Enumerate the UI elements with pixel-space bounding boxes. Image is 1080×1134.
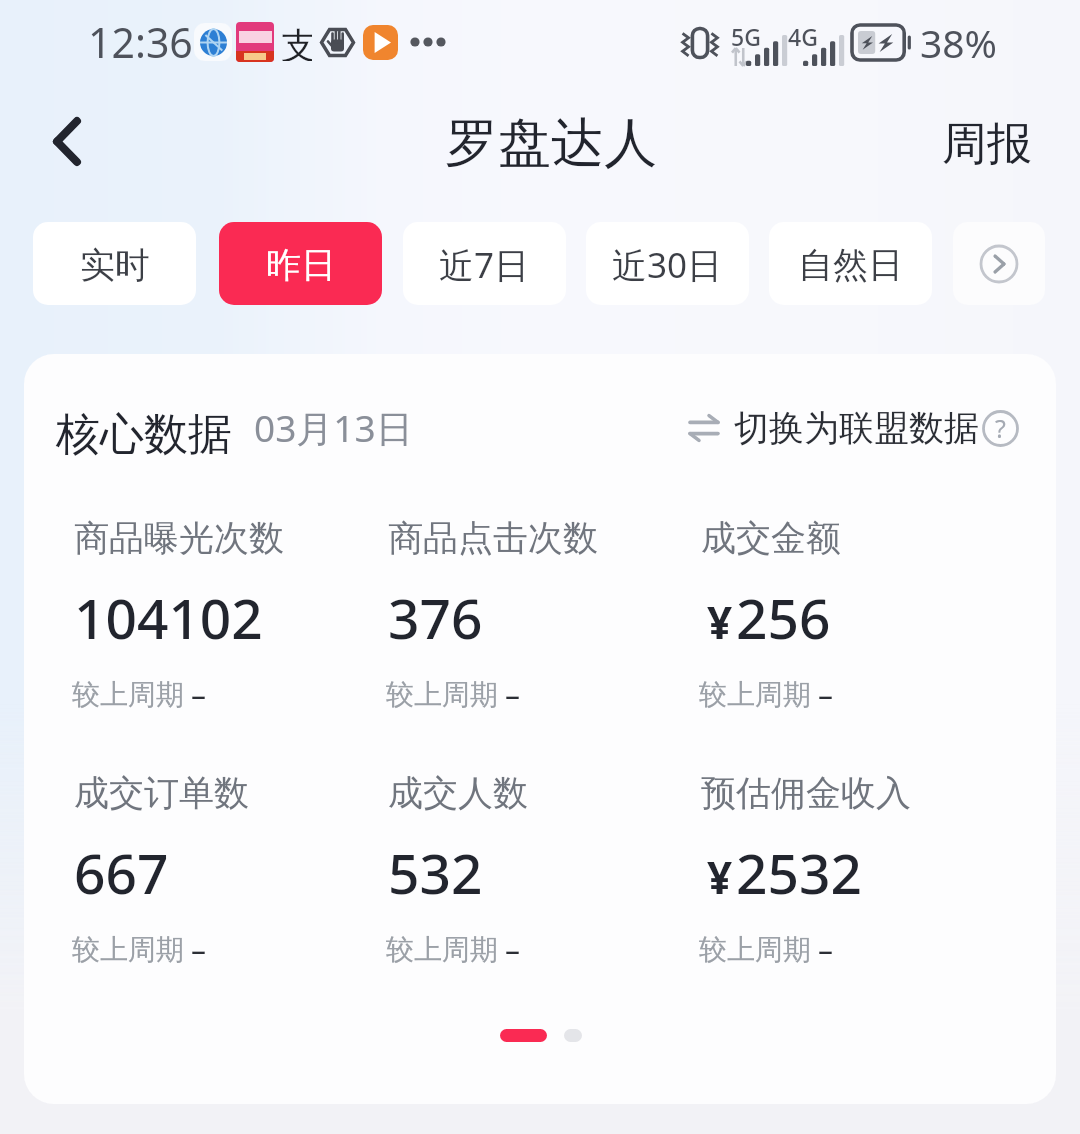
button[interactable]: 切换为联盟数据 xyxy=(690,406,1019,450)
staticText: 成交人数 xyxy=(388,771,528,815)
staticText: 较上周期 xyxy=(72,932,184,967)
staticText: 成交金额 xyxy=(701,516,841,560)
staticText: 近30日 xyxy=(612,241,723,289)
staticText: – xyxy=(505,929,520,970)
staticText: 自然日 xyxy=(798,243,903,287)
staticText: 4G xyxy=(788,21,818,52)
staticText: – xyxy=(191,674,206,715)
staticText: 商品曝光次数 xyxy=(74,516,284,560)
staticText: 昨日 xyxy=(266,243,336,287)
staticText: 532 xyxy=(388,835,483,910)
staticText: 376 xyxy=(388,580,483,655)
button[interactable]: 实时 xyxy=(33,222,196,305)
button[interactable]: 近30日 xyxy=(586,222,749,305)
staticText: 近7日 xyxy=(439,241,530,289)
staticText: 2532 xyxy=(736,835,862,910)
staticText: ? xyxy=(995,411,1006,445)
staticText: 较上周期 xyxy=(72,677,184,712)
staticText: 实时 xyxy=(80,243,150,287)
button[interactable]: 近7日 xyxy=(403,222,566,305)
button[interactable]: Back xyxy=(26,100,108,182)
staticText: 核心数据 xyxy=(56,407,232,462)
staticText: 38% xyxy=(920,16,998,69)
button[interactable]: 自然日 xyxy=(769,222,932,305)
staticText: 预估佣金收入 xyxy=(701,771,911,815)
staticText: ¥ xyxy=(707,592,733,652)
staticText: ¥ xyxy=(707,847,733,907)
button[interactable]: 周报 xyxy=(928,109,1046,182)
button[interactable]: 昨日 xyxy=(219,222,382,305)
staticText: 支 xyxy=(281,23,312,61)
staticText: 较上周期 xyxy=(386,932,498,967)
staticText: – xyxy=(818,674,833,715)
staticText: – xyxy=(818,929,833,970)
staticText: 667 xyxy=(74,835,169,910)
staticText: 5G xyxy=(731,21,761,52)
staticText: 104102 xyxy=(74,580,263,655)
staticText: 较上周期 xyxy=(386,677,498,712)
staticText: 商品点击次数 xyxy=(388,516,598,560)
staticText: 较上周期 xyxy=(699,932,811,967)
staticText: 罗盘达人 xyxy=(445,110,657,177)
staticText: 较上周期 xyxy=(699,677,811,712)
staticText: 周报 xyxy=(942,116,1032,173)
staticText: 12:36 xyxy=(88,14,193,70)
staticText: 成交订单数 xyxy=(74,771,249,815)
staticText: – xyxy=(505,674,520,715)
staticText: 256 xyxy=(736,580,831,655)
staticText: 03月13日 xyxy=(254,402,413,453)
staticText: 切换为联盟数据 xyxy=(734,406,979,450)
staticText: – xyxy=(191,929,206,970)
button[interactable]: More filters xyxy=(953,222,1045,305)
